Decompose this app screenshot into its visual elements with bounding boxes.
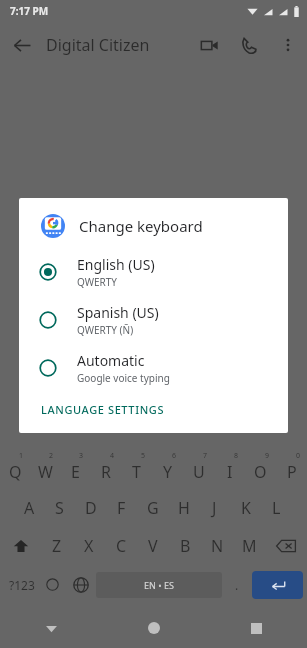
staticText: 0 <box>296 451 301 461</box>
staticText: A <box>24 497 35 519</box>
button[interactable]: Automatic <box>19 344 288 392</box>
staticText: C <box>116 535 127 557</box>
staticText: LANGUAGE SETTINGS <box>41 402 165 417</box>
staticText: J <box>212 497 217 519</box>
staticText: Digital Citizen <box>46 34 150 56</box>
button[interactable]: A <box>14 489 44 527</box>
button[interactable]: H <box>168 489 199 527</box>
button[interactable]: Back <box>0 23 44 67</box>
staticText: N <box>211 535 224 557</box>
button[interactable]: Change keyboard language <box>66 565 96 605</box>
staticText: V <box>148 535 158 557</box>
button[interactable]: EN • ES <box>96 572 222 598</box>
staticText: 8 <box>234 451 239 461</box>
button[interactable]: LANGUAGE SETTINGS <box>19 398 288 433</box>
staticText: E <box>71 461 80 483</box>
button[interactable]: ?123 <box>4 565 39 605</box>
button[interactable]: G <box>137 489 168 527</box>
staticText: K <box>241 497 251 519</box>
staticText: L <box>272 497 281 519</box>
button[interactable]: D <box>75 489 106 527</box>
staticText: QWERTY (Ñ) <box>77 323 134 337</box>
button[interactable]: B <box>169 527 201 565</box>
button[interactable]: C <box>105 527 137 565</box>
button[interactable]: More options <box>269 26 307 64</box>
staticText: Spanish (US) <box>77 303 159 322</box>
staticText: ?123 <box>9 577 35 593</box>
staticText: Y <box>163 461 173 483</box>
staticText: X <box>84 535 94 557</box>
button[interactable]: U <box>183 451 214 489</box>
button[interactable]: F <box>106 489 137 527</box>
button[interactable]: Spanish (US) <box>19 296 288 344</box>
button[interactable]: Recents <box>205 608 307 648</box>
staticText: D <box>85 497 97 519</box>
staticText: U <box>193 461 205 483</box>
button[interactable]: E <box>60 451 90 489</box>
staticText: 9 <box>265 451 270 461</box>
button[interactable]: L <box>261 489 292 527</box>
staticText: Google voice typing <box>77 371 170 385</box>
button[interactable]: W <box>30 451 60 489</box>
button[interactable]: J <box>199 489 230 527</box>
staticText: Change keyboard <box>79 216 203 236</box>
staticText: QWERTY <box>77 275 118 289</box>
staticText: 7 <box>203 451 208 461</box>
staticText: 5 <box>141 451 146 461</box>
staticText: T <box>132 461 141 483</box>
button[interactable]: R <box>90 451 121 489</box>
button[interactable]: Z <box>41 527 73 565</box>
button[interactable]: M <box>233 527 265 565</box>
button[interactable]: Q <box>0 451 30 489</box>
button[interactable]: Enter <box>252 571 303 599</box>
button[interactable]: P <box>276 451 307 489</box>
button[interactable]: T <box>121 451 152 489</box>
button[interactable]: I <box>214 451 245 489</box>
button[interactable]: Y <box>152 451 183 489</box>
staticText: . <box>235 577 239 593</box>
staticText: 6 <box>172 451 177 461</box>
staticText: P <box>287 461 297 483</box>
button[interactable]: O <box>245 451 276 489</box>
staticText: 2 <box>49 451 54 461</box>
staticText: B <box>180 535 191 557</box>
button[interactable]: Emoji <box>39 565 66 605</box>
staticText: H <box>178 497 190 519</box>
button[interactable]: Home <box>103 608 205 648</box>
button[interactable]: Shift <box>0 527 41 565</box>
button[interactable]: S <box>44 489 75 527</box>
button[interactable]: Backspace <box>265 527 307 565</box>
button[interactable]: K <box>230 489 261 527</box>
button[interactable]: V <box>137 527 169 565</box>
button[interactable]: Video call <box>189 25 229 65</box>
button[interactable]: N <box>201 527 233 565</box>
staticText: G <box>147 497 159 519</box>
staticText: Z <box>52 535 62 557</box>
staticText: 4 <box>110 451 115 461</box>
button[interactable]: Call <box>229 25 269 65</box>
staticText: S <box>55 497 64 519</box>
staticText: Automatic <box>77 351 145 370</box>
staticText: Q <box>9 461 22 483</box>
button[interactable]: Back <box>0 608 103 648</box>
staticText: I <box>227 461 233 483</box>
staticText: 7:17 PM <box>10 4 49 18</box>
staticText: EN • ES <box>144 579 174 591</box>
staticText: 3 <box>79 451 84 461</box>
staticText: O <box>254 461 267 483</box>
staticText: English (US) <box>77 255 155 274</box>
staticText: M <box>242 535 257 557</box>
button[interactable]: English (US) <box>19 248 288 296</box>
staticText: 1 <box>19 451 24 461</box>
staticText: W <box>38 461 53 483</box>
staticText: F <box>117 497 126 519</box>
staticText: R <box>101 461 111 483</box>
button[interactable]: X <box>73 527 105 565</box>
